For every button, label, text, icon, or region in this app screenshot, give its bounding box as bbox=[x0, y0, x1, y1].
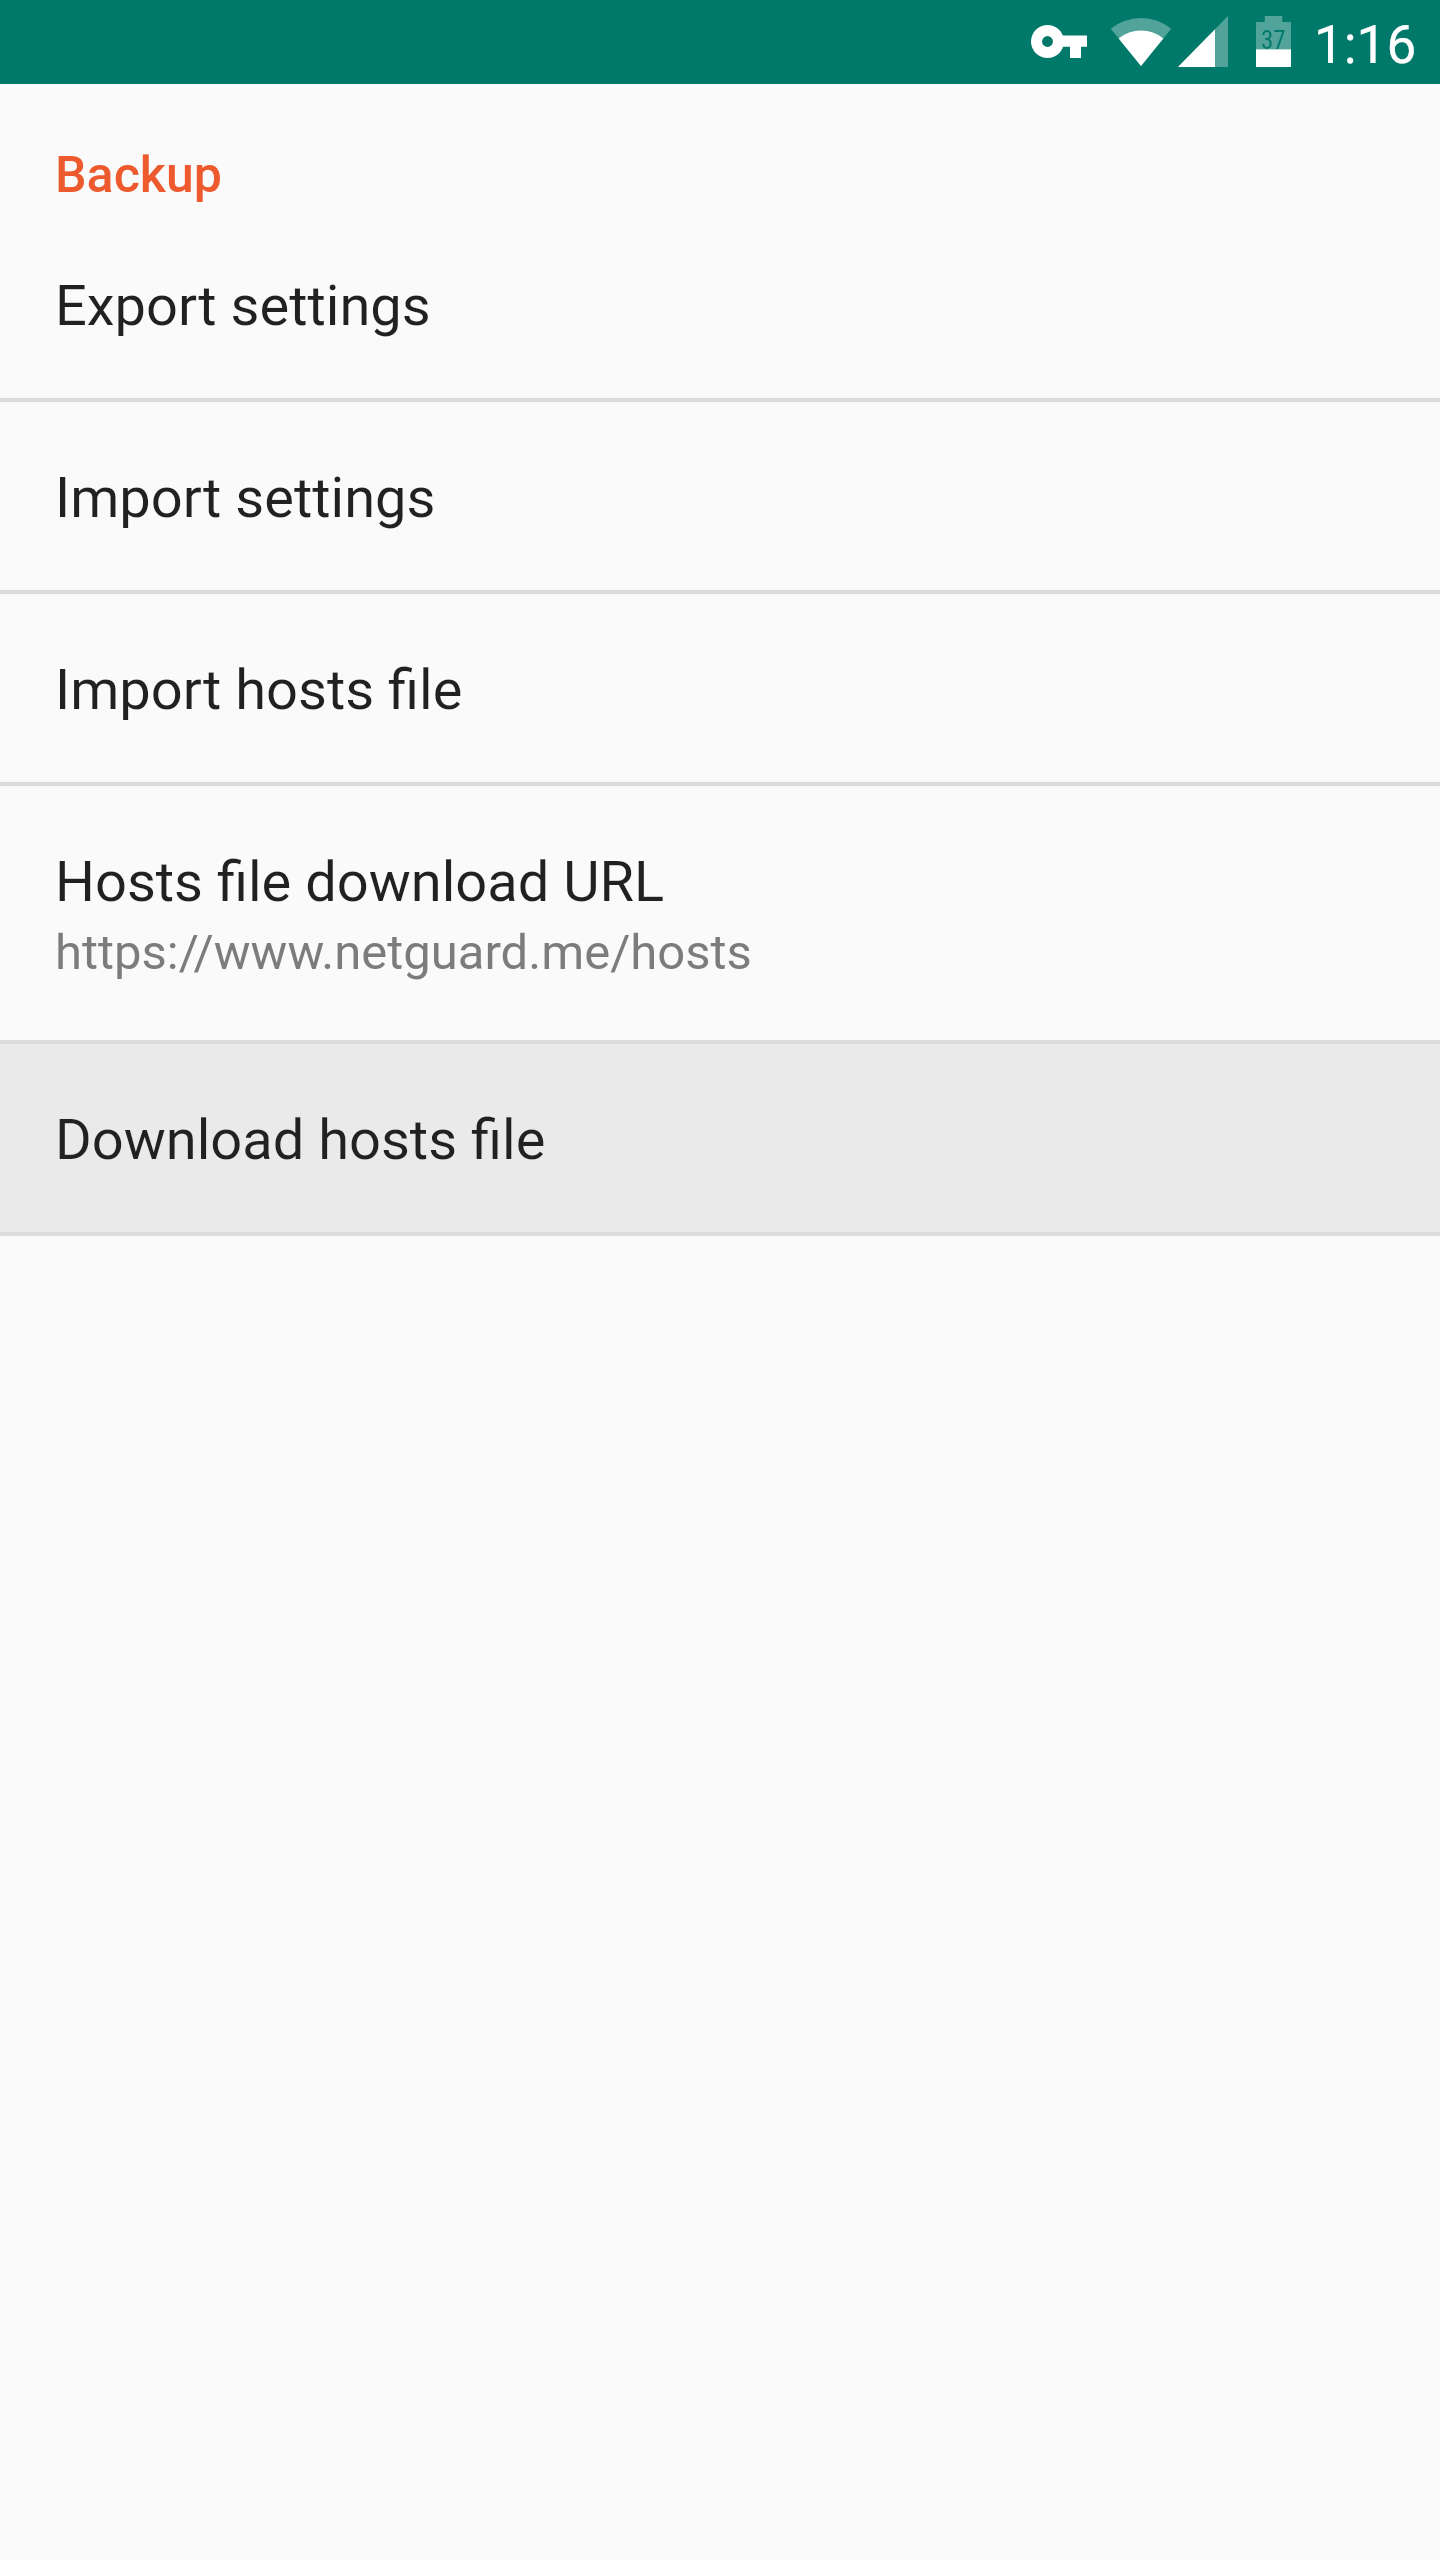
other: Wi-Fi signal bbox=[1110, 17, 1172, 66]
other: Battery 37 percent bbox=[1256, 16, 1291, 67]
button[interactable]: Download hosts file bbox=[0, 1044, 1440, 1232]
other: Mobile signal bbox=[1178, 16, 1228, 67]
staticText: Import settings bbox=[55, 465, 436, 531]
button[interactable]: Import settings bbox=[0, 402, 1440, 590]
staticText: Export settings bbox=[55, 273, 431, 339]
staticText: Import hosts file bbox=[55, 657, 463, 723]
staticText: https://www.netguard.me/hosts bbox=[55, 924, 752, 981]
staticText: Hosts file download URL bbox=[55, 849, 665, 915]
button[interactable]: Export settings bbox=[0, 210, 1440, 398]
button[interactable]: Hosts file download URL bbox=[0, 786, 1440, 1040]
staticText: Download hosts file bbox=[55, 1107, 546, 1173]
staticText: Backup bbox=[55, 146, 222, 205]
button[interactable]: Import hosts file bbox=[0, 594, 1440, 782]
staticText: 1:16 bbox=[1314, 14, 1417, 76]
staticText: 37 bbox=[1261, 26, 1286, 55]
other: VPN active bbox=[1031, 25, 1087, 58]
